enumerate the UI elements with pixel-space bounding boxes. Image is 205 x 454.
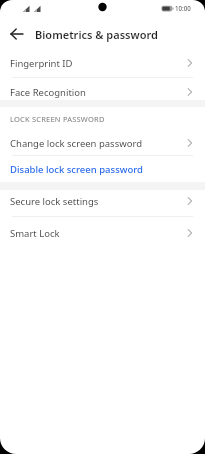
button[interactable]: Secure lock settings (0, 188, 205, 214)
staticText: Smart Lock (10, 227, 60, 240)
staticText: Disable lock screen password (10, 163, 143, 176)
staticText: LOCK SCREEN PASSWORD (10, 114, 105, 124)
staticText: Biometrics & password (35, 27, 158, 42)
button[interactable]: Smart Lock (0, 220, 205, 246)
staticText: Secure lock settings (10, 195, 99, 208)
button[interactable]: Disable lock screen password (0, 156, 205, 182)
staticText: Fingerprint ID (10, 57, 73, 70)
staticText: Face Recognition (10, 86, 86, 99)
button[interactable]: Face Recognition (0, 79, 205, 105)
staticText: 10:00 (175, 4, 191, 12)
button[interactable]: Fingerprint ID (0, 50, 205, 76)
staticText: Change lock screen password (10, 137, 143, 150)
button[interactable]: Change lock screen password (0, 130, 205, 156)
button[interactable] (4, 24, 30, 44)
